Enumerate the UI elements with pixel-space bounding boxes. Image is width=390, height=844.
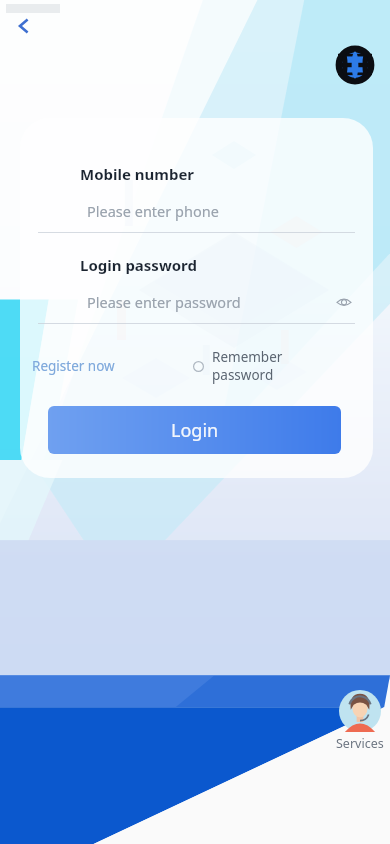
button[interactable]: Services xyxy=(332,690,388,752)
button[interactable]: Please enter phone xyxy=(38,198,355,224)
button[interactable]: Login xyxy=(48,406,341,454)
button[interactable]: Show password xyxy=(333,291,355,313)
staticText: Please enter phone xyxy=(87,201,219,221)
button[interactable]: Back xyxy=(6,8,42,44)
staticText: Login password xyxy=(80,255,198,275)
button[interactable]: Remember password xyxy=(193,348,345,384)
button[interactable]: Please enter password xyxy=(38,289,355,315)
staticText: Services xyxy=(336,735,384,752)
staticText: Mobile number xyxy=(80,164,195,184)
staticText: Remember password xyxy=(212,348,345,384)
button[interactable]: Register now xyxy=(32,357,115,375)
button[interactable]: Language xyxy=(336,46,374,84)
staticText: Register now xyxy=(32,357,115,375)
staticText: Please enter password xyxy=(87,292,241,312)
staticText: Login xyxy=(171,418,219,443)
